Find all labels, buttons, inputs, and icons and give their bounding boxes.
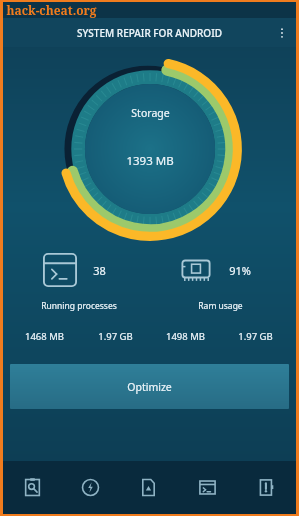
staticText: 1.97 GB [238, 330, 273, 343]
button[interactable]: 91% [154, 253, 286, 312]
button[interactable]: Optimize [10, 364, 289, 409]
button[interactable]: Boost [61, 461, 119, 514]
staticText: hack-cheat.org [6, 2, 97, 18]
button[interactable]: Battery [237, 461, 296, 514]
staticText: Storage [131, 106, 170, 120]
button[interactable]: Apps [178, 461, 237, 514]
staticText: 1498 MB [166, 330, 205, 343]
staticText: 1.97 GB [98, 330, 133, 343]
staticText: SYSTEM REPAIR FOR ANDROID [77, 26, 222, 40]
staticText: Optimize [127, 380, 172, 394]
button[interactable]: 38 [13, 253, 145, 312]
staticText: 38 [93, 263, 106, 278]
staticText: 1468 MB [25, 330, 64, 343]
button[interactable]: Scan [3, 461, 61, 514]
button[interactable]: More options [268, 18, 296, 47]
staticText: Ram usage [198, 300, 243, 312]
button[interactable]: Files [119, 461, 178, 514]
staticText: 91% [229, 263, 251, 278]
staticText: Running processes [41, 300, 117, 312]
staticText: 1393 MB [126, 153, 174, 169]
